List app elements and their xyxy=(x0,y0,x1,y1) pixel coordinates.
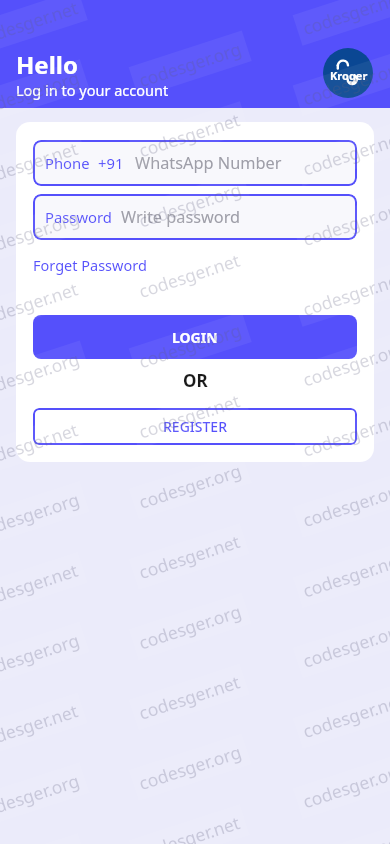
staticText: LOGIN xyxy=(172,328,218,347)
button[interactable]: LOGIN xyxy=(33,315,357,359)
staticText: Write password xyxy=(121,206,241,228)
button[interactable]: Phone xyxy=(33,140,357,186)
staticText: Password xyxy=(45,207,112,227)
staticText: Kroger xyxy=(330,68,368,83)
staticText: WhatsApp Number xyxy=(135,152,282,174)
staticText: Forget Password xyxy=(33,255,147,275)
button[interactable]: Password xyxy=(33,194,357,240)
staticText: +91 xyxy=(98,153,124,173)
button[interactable]: REGISTER xyxy=(33,408,357,445)
staticText: Hello xyxy=(16,48,78,81)
other: Kroger logo xyxy=(323,48,373,98)
button[interactable]: Forget Password xyxy=(33,255,147,275)
staticText: OR xyxy=(183,369,208,392)
staticText: REGISTER xyxy=(163,417,227,436)
staticText: Phone xyxy=(45,153,90,173)
staticText: Log in to your account xyxy=(16,80,169,100)
